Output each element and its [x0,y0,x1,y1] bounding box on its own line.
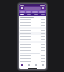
button[interactable] [19,24,46,27]
button[interactable]: Nav 0 [19,63,25,67]
button[interactable]: Menu [21,7,23,9]
button[interactable]: Nav 3 [39,63,46,67]
button[interactable]: Filter 3 [39,11,45,13]
button[interactable] [19,38,46,41]
button[interactable]: Tab 1 [25,13,32,16]
button[interactable]: Filter 2 [32,11,38,13]
button[interactable] [19,46,46,49]
button[interactable]: Nav 1 [25,63,32,67]
button[interactable] [19,35,46,38]
button[interactable]: Nav 2 [32,63,39,67]
button[interactable] [19,60,46,63]
button[interactable]: Search [24,7,41,10]
button[interactable]: Tab 3 [39,13,46,16]
button[interactable] [19,43,46,46]
button[interactable] [19,18,46,21]
button[interactable]: Filter 1 [26,11,31,13]
button[interactable]: Tab 2 [32,13,39,16]
button[interactable] [19,49,46,52]
button[interactable] [19,29,46,32]
button[interactable]: Filter 0 [20,11,25,13]
button[interactable] [19,21,46,24]
button[interactable]: Tab 0 [19,13,25,16]
button[interactable] [19,57,46,60]
button[interactable] [19,54,46,57]
button[interactable] [19,32,46,35]
